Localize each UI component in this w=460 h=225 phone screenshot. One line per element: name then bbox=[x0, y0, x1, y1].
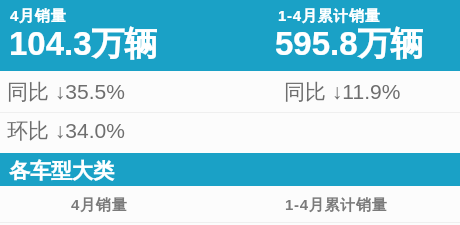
button[interactable]: 各车型大类 bbox=[0, 153, 460, 186]
button[interactable]: 1-4月累计销量 bbox=[230, 186, 460, 222]
staticText: 各车型大类 bbox=[9, 158, 114, 184]
staticText: 1-4月累计销量 bbox=[278, 7, 381, 26]
staticText: 同比 ↓11.9% bbox=[284, 79, 401, 105]
staticText: 同比 ↓35.5% bbox=[7, 79, 125, 105]
staticText: 4月销量 bbox=[71, 196, 128, 215]
staticText: 环比 ↓34.0% bbox=[7, 118, 125, 144]
staticText: 4月销量 bbox=[10, 7, 67, 26]
button[interactable]: 同比 ↓11.9% bbox=[230, 71, 460, 112]
staticText: 1-4月累计销量 bbox=[285, 196, 388, 215]
staticText: 104.3万辆 bbox=[9, 23, 158, 65]
staticText: 595.8万辆 bbox=[275, 23, 424, 65]
button[interactable]: 同比 ↓35.5% bbox=[0, 71, 230, 112]
button[interactable]: 环比 ↓34.0% bbox=[0, 113, 230, 153]
button[interactable]: 4月销量 bbox=[0, 186, 230, 222]
button[interactable]: 1-4月累计销量 bbox=[230, 0, 460, 71]
button[interactable]: 4月销量 bbox=[0, 0, 230, 71]
